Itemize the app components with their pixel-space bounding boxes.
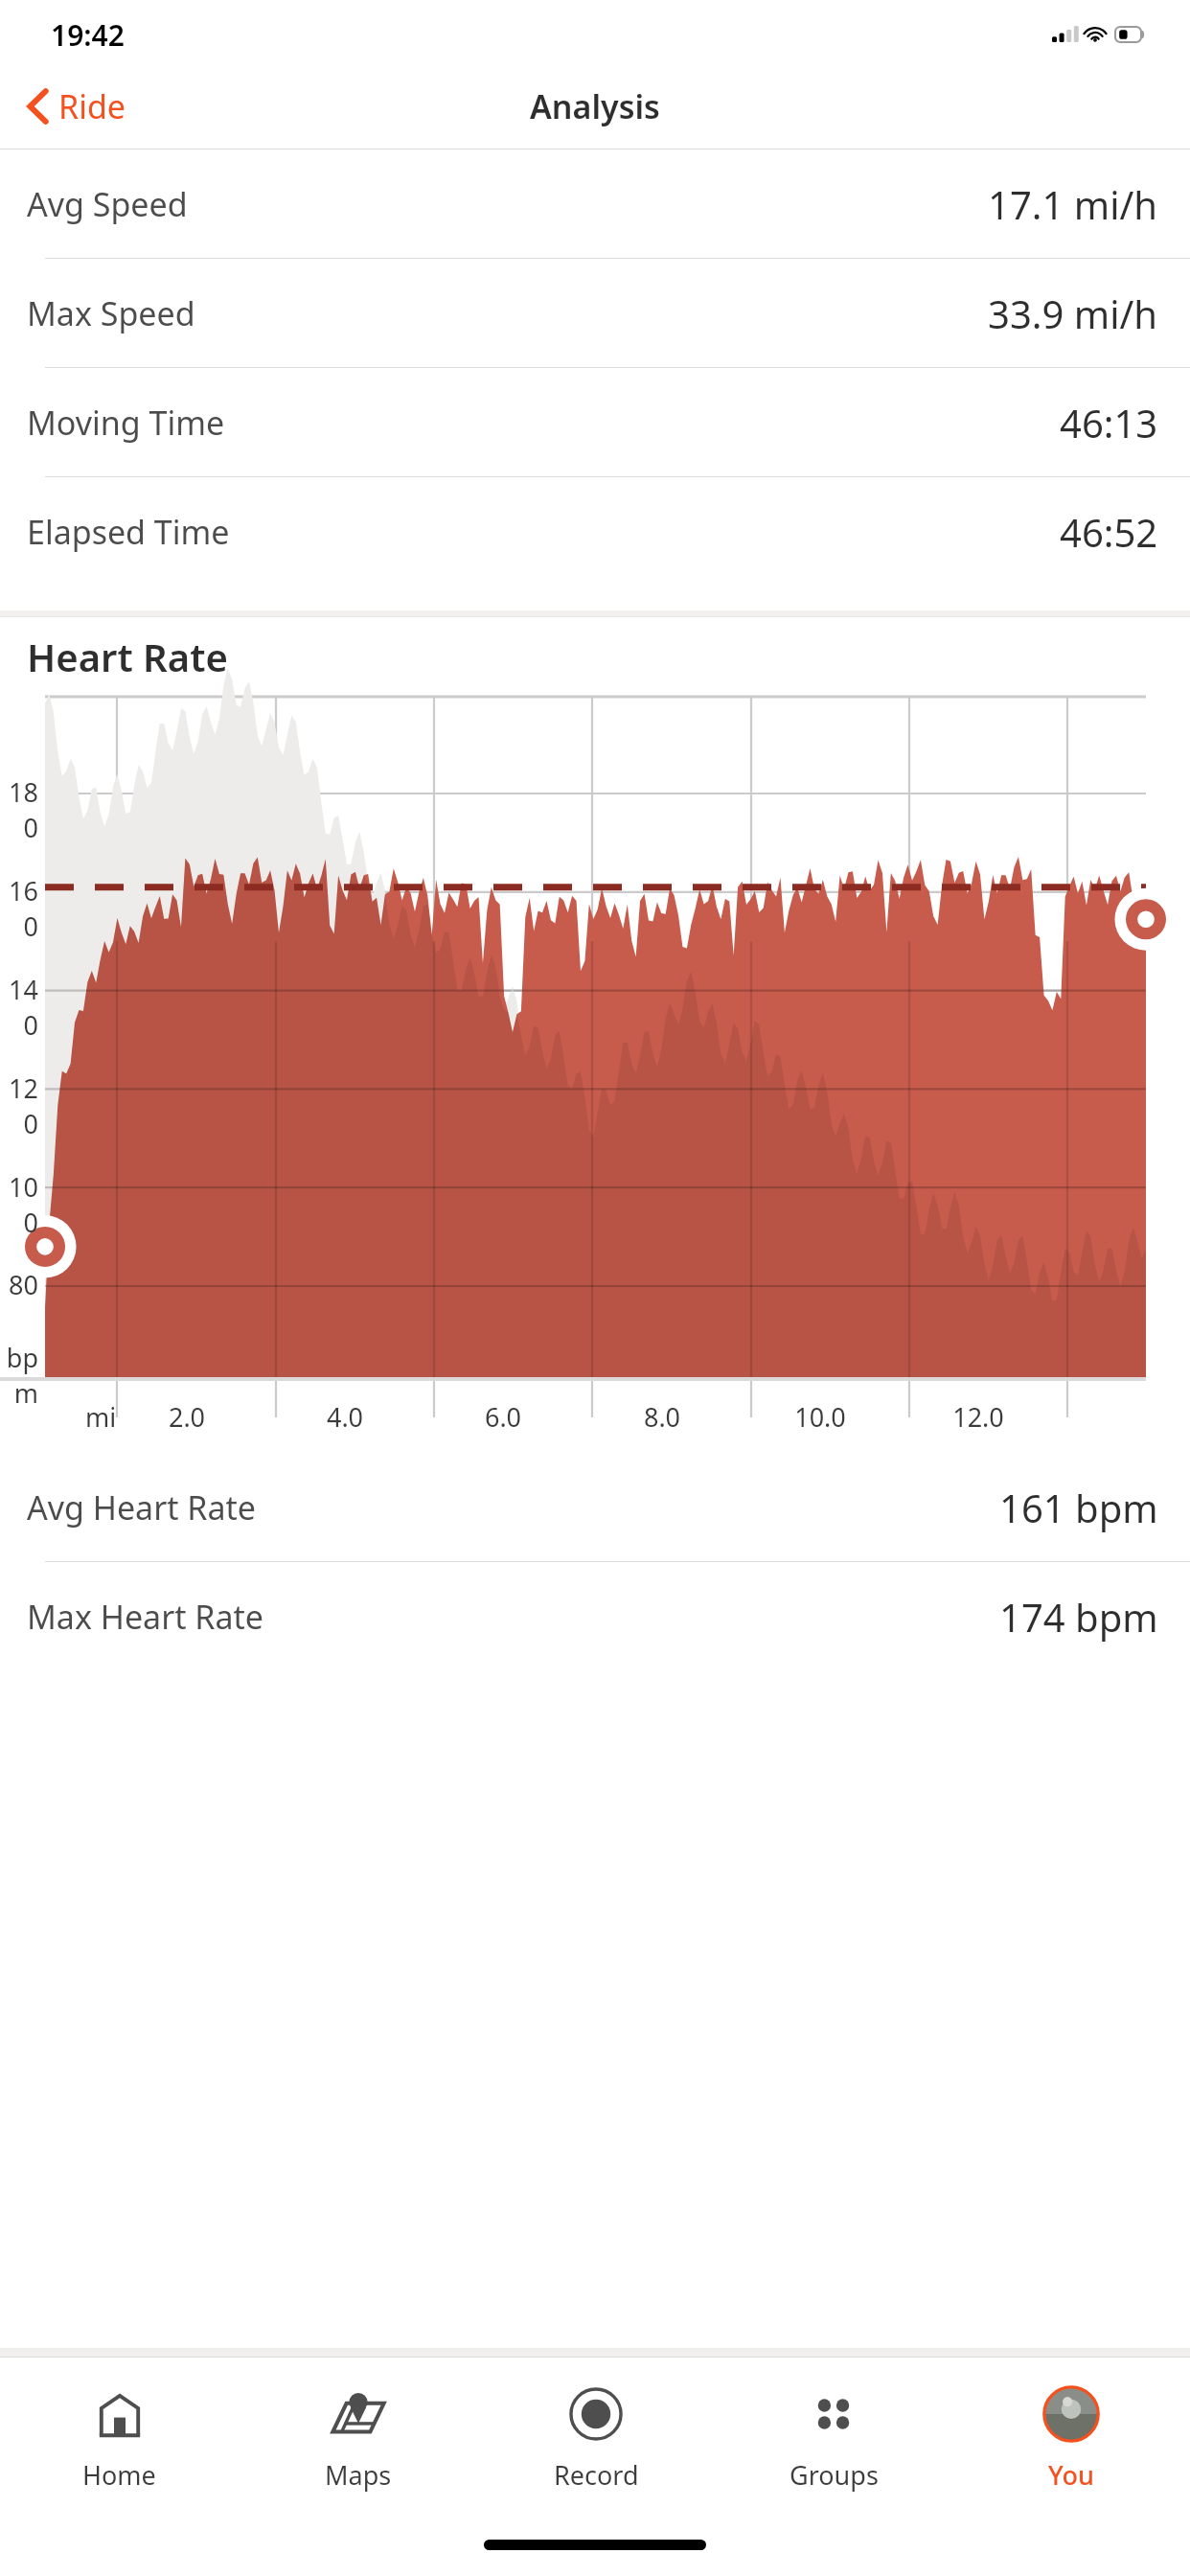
staticText: 12.0 (950, 1399, 1007, 1435)
button[interactable]: Record (477, 2357, 715, 2520)
staticText: 17.1 mi/h (988, 178, 1158, 230)
staticText: 6.0 (474, 1399, 532, 1435)
staticText: You (1048, 2457, 1094, 2493)
staticText: bpm (0, 1340, 38, 1411)
staticText: mi (72, 1399, 129, 1435)
staticText: Avg Heart Rate (27, 1485, 257, 1529)
button[interactable]: Max Speed (0, 259, 1190, 367)
other: Home (91, 2385, 149, 2443)
staticText: Analysis (530, 84, 660, 128)
staticText: Moving Time (27, 401, 225, 445)
staticText: Ride (58, 84, 126, 128)
staticText: 19:42 (51, 15, 125, 55)
staticText: Avg Speed (27, 182, 188, 226)
staticText: 80 (0, 1267, 38, 1302)
staticText: 46:52 (1060, 506, 1158, 558)
staticText: Record (554, 2457, 639, 2493)
staticText: 10.0 (791, 1399, 849, 1435)
staticText: 100 (0, 1169, 38, 1240)
staticText: 174 bpm (999, 1591, 1158, 1643)
other: Record (566, 2384, 626, 2444)
staticText: 160 (0, 873, 38, 944)
staticText: Elapsed Time (27, 510, 230, 554)
staticText: 33.9 mi/h (988, 287, 1158, 339)
staticText: 46:13 (1060, 397, 1158, 448)
button[interactable]: Ride (0, 77, 142, 136)
staticText: 180 (0, 774, 38, 845)
staticText: Maps (325, 2457, 392, 2493)
button[interactable]: Groups (715, 2357, 952, 2520)
button[interactable]: Avg Heart Rate (0, 1453, 1190, 1561)
button[interactable]: Moving Time (0, 368, 1190, 476)
other: Groups (806, 2386, 861, 2442)
staticText: Max Heart Rate (27, 1595, 264, 1639)
button[interactable]: Elapsed Time (0, 477, 1190, 586)
staticText: Home (82, 2457, 156, 2493)
other: Maps (329, 2384, 388, 2444)
button[interactable]: You (952, 2357, 1190, 2520)
staticText: 2.0 (158, 1399, 216, 1435)
button[interactable]: Avg Speed (0, 149, 1190, 258)
button[interactable]: Home (0, 2357, 239, 2520)
staticText: 4.0 (316, 1399, 374, 1435)
button[interactable]: Max Heart Rate (0, 1562, 1190, 1670)
staticText: Heart Rate (27, 631, 228, 682)
button[interactable]: Maps (239, 2357, 477, 2520)
staticText: 140 (0, 972, 38, 1043)
other: You (1041, 2383, 1102, 2445)
staticText: 120 (0, 1070, 38, 1141)
staticText: Groups (790, 2457, 879, 2493)
staticText: 8.0 (633, 1399, 691, 1435)
staticText: 161 bpm (999, 1482, 1158, 1533)
staticText: Max Speed (27, 291, 195, 335)
